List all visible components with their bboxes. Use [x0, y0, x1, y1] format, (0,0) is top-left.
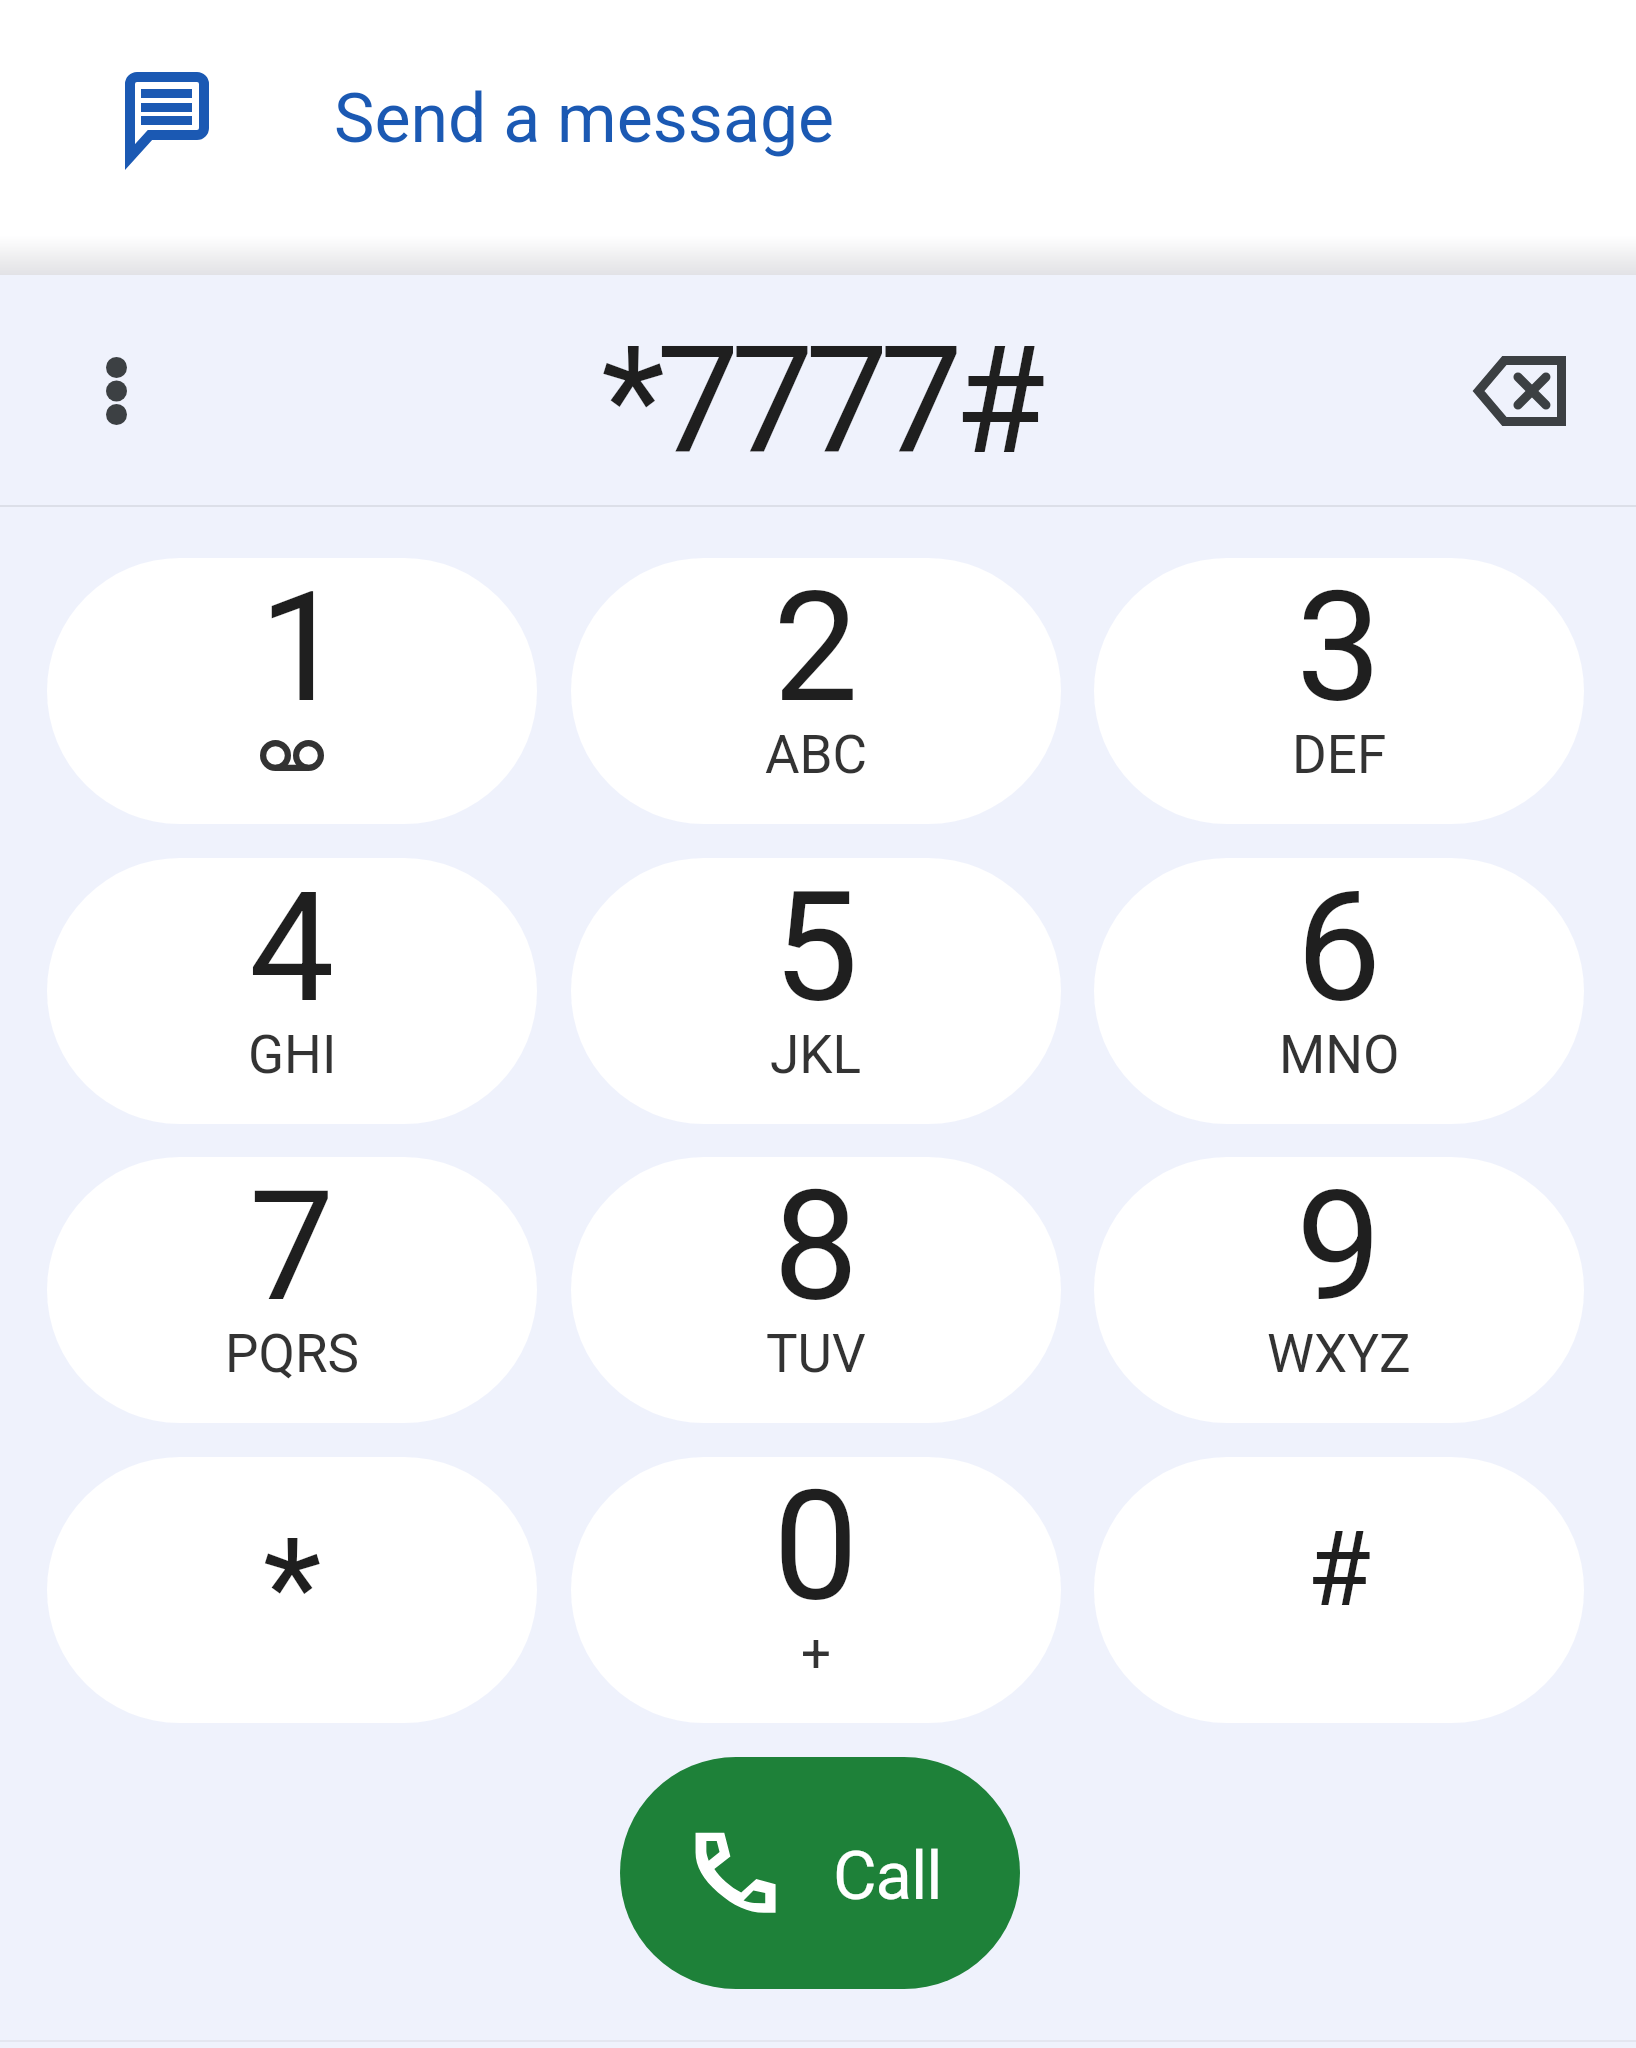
staticText: PQRS — [225, 1323, 360, 1385]
staticText: TUV — [766, 1323, 866, 1385]
staticText: # — [1307, 1509, 1372, 1631]
button[interactable]: 1 — [47, 558, 537, 824]
staticText: 3 — [1296, 559, 1382, 737]
button[interactable]: 0 — [571, 1457, 1061, 1723]
staticText: 1 — [259, 559, 345, 737]
staticText: 9 — [1296, 1158, 1382, 1336]
staticText: DEF — [1292, 724, 1387, 786]
staticText: * — [263, 1509, 322, 1668]
button[interactable]: 2 — [571, 558, 1061, 824]
staticText: 6 — [1296, 859, 1382, 1037]
staticText: Send a message — [334, 79, 835, 159]
staticText: 5 — [773, 859, 859, 1037]
staticText: 0 — [773, 1458, 859, 1636]
staticText: 7 — [249, 1158, 335, 1336]
button[interactable]: Send a message — [0, 0, 1636, 235]
button[interactable]: More options — [61, 336, 171, 446]
staticText: JKL — [770, 1024, 862, 1086]
button[interactable]: 8 — [571, 1157, 1061, 1423]
staticText: 2 — [773, 559, 859, 737]
button[interactable]: Call — [620, 1757, 1020, 1989]
button[interactable]: 9 — [1094, 1157, 1584, 1423]
staticText: WXYZ — [1267, 1323, 1411, 1385]
staticText: 4 — [249, 859, 335, 1037]
button[interactable]: 7 — [47, 1157, 537, 1423]
button[interactable]: # — [1094, 1457, 1584, 1723]
staticText: ABC — [765, 724, 868, 786]
staticText: MNO — [1279, 1024, 1400, 1086]
staticText: Call — [833, 1837, 942, 1916]
button[interactable]: 4 — [47, 858, 537, 1124]
staticText: GHI — [248, 1024, 337, 1086]
button[interactable]: 3 — [1094, 558, 1584, 824]
staticText: + — [801, 1623, 832, 1685]
staticText: *7777# — [1, 315, 1636, 488]
button[interactable]: * — [47, 1457, 537, 1723]
button[interactable]: 6 — [1094, 858, 1584, 1124]
staticText: 8 — [773, 1158, 859, 1336]
button[interactable]: Backspace — [1465, 336, 1575, 446]
button[interactable]: 5 — [571, 858, 1061, 1124]
